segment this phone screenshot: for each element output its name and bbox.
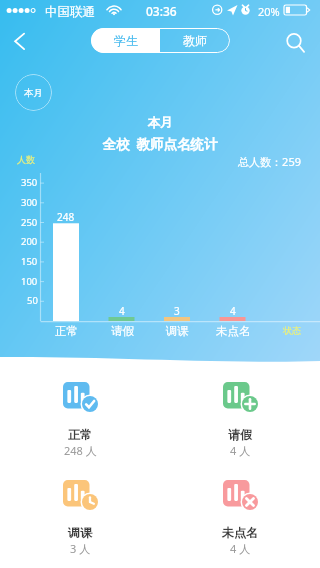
- staticText: 中国联通: [45, 4, 95, 20]
- staticText: 未点名: [216, 324, 251, 338]
- button[interactable]: 请假: [160, 382, 320, 458]
- button[interactable]: Search: [278, 21, 316, 61]
- staticText: 4: [119, 304, 125, 318]
- staticText: 正常: [55, 324, 78, 338]
- staticText: 请假: [228, 427, 252, 442]
- staticText: 本月: [0, 115, 320, 131]
- button[interactable]: Back: [2, 21, 38, 61]
- staticText: 请假: [111, 324, 134, 338]
- staticText: 调课: [166, 324, 189, 338]
- button[interactable]: 调课: [0, 480, 160, 556]
- staticText: 4 人: [230, 443, 251, 458]
- staticText: 03:36: [146, 3, 177, 19]
- button[interactable]: 教师: [160, 28, 230, 53]
- button[interactable]: 正常: [0, 382, 160, 458]
- staticText: 全校 教师点名统计: [0, 135, 320, 153]
- staticText: 人数: [17, 154, 35, 165]
- staticText: 300: [21, 196, 38, 209]
- staticText: 教师: [183, 33, 207, 48]
- staticText: 248 人: [64, 443, 97, 458]
- staticText: 3 人: [70, 541, 91, 556]
- staticText: 3: [174, 304, 180, 318]
- staticText: 20%: [258, 4, 280, 19]
- staticText: 250: [21, 216, 38, 229]
- staticText: 4: [230, 304, 236, 318]
- staticText: 本月: [24, 87, 43, 99]
- staticText: 调课: [68, 525, 92, 540]
- button[interactable]: 学生: [91, 28, 160, 53]
- staticText: 学生: [114, 33, 138, 48]
- button[interactable]: 本月: [15, 74, 52, 111]
- staticText: 100: [21, 275, 38, 288]
- staticText: 200: [21, 235, 38, 248]
- staticText: 50: [27, 294, 38, 307]
- staticText: 正常: [68, 427, 92, 442]
- staticText: 状态: [283, 325, 301, 336]
- staticText: 248: [57, 210, 75, 224]
- staticText: 总人数：259: [0, 154, 301, 169]
- staticText: 350: [21, 176, 38, 189]
- staticText: 150: [21, 255, 38, 268]
- staticText: 4 人: [230, 541, 251, 556]
- button[interactable]: 未点名: [160, 480, 320, 556]
- staticText: 未点名: [222, 525, 258, 540]
